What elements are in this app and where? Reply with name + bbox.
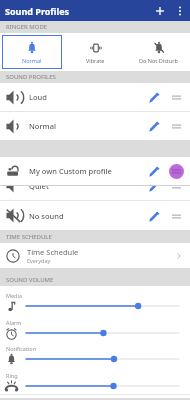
button[interactable]: Add bbox=[150, 1, 170, 21]
staticText: RINGER MODE bbox=[6, 23, 48, 31]
staticText: Media bbox=[6, 292, 22, 299]
button[interactable]: Edit No sound bbox=[143, 205, 165, 227]
button[interactable]: Vibrate bbox=[66, 35, 125, 69]
button[interactable]: Notification bbox=[0, 339, 190, 366]
button[interactable]: No sound bbox=[0, 201, 190, 230]
staticText: Sound Profiles bbox=[5, 5, 70, 17]
button[interactable]: Normal bbox=[0, 112, 190, 140]
button[interactable]: Reorder No sound bbox=[165, 205, 187, 227]
button[interactable]: Edit Normal bbox=[143, 115, 165, 137]
button[interactable]: Ring bbox=[0, 366, 190, 393]
button[interactable]: Do Not Disturb bbox=[129, 35, 188, 69]
staticText: My own Custom profile bbox=[29, 166, 143, 176]
button[interactable]: Media bbox=[0, 286, 190, 313]
staticText: Alarm bbox=[6, 319, 22, 326]
staticText: TIME SCHEDULE bbox=[6, 233, 52, 241]
button[interactable]: Reorder My own Custom profile bbox=[165, 160, 187, 182]
button[interactable]: My own Custom profile bbox=[0, 157, 190, 185]
staticText: Loud bbox=[29, 92, 143, 102]
button[interactable]: Reorder Normal bbox=[165, 115, 187, 137]
button[interactable]: Loud bbox=[0, 83, 190, 111]
button[interactable]: Normal bbox=[2, 35, 62, 69]
staticText: Normal bbox=[22, 57, 42, 64]
staticText: Time Schedule bbox=[27, 247, 79, 257]
button[interactable]: Edit Loud bbox=[143, 86, 165, 108]
staticText: Quiet bbox=[29, 181, 143, 191]
staticText: Everyday bbox=[27, 257, 51, 264]
staticText: Normal bbox=[29, 121, 143, 131]
button[interactable]: Quiet bbox=[0, 171, 190, 200]
staticText: Notification bbox=[6, 345, 37, 352]
button[interactable]: More options bbox=[170, 1, 190, 21]
button[interactable]: Reorder Loud bbox=[165, 86, 187, 108]
button[interactable]: Edit Quiet bbox=[143, 175, 165, 197]
staticText: Do Not Disturb bbox=[139, 57, 178, 64]
button[interactable]: Alarm bbox=[0, 313, 190, 340]
staticText: Vibrate bbox=[86, 57, 105, 64]
staticText: No sound bbox=[29, 211, 143, 221]
button[interactable]: Time Schedule bbox=[0, 243, 190, 268]
button[interactable]: Edit My own Custom profile bbox=[143, 160, 165, 182]
button[interactable]: Reorder Quiet bbox=[165, 175, 187, 197]
staticText: Ring bbox=[6, 372, 18, 379]
staticText: SOUND PROFILES bbox=[6, 73, 56, 81]
staticText: SOUND VOLUME bbox=[6, 276, 54, 284]
